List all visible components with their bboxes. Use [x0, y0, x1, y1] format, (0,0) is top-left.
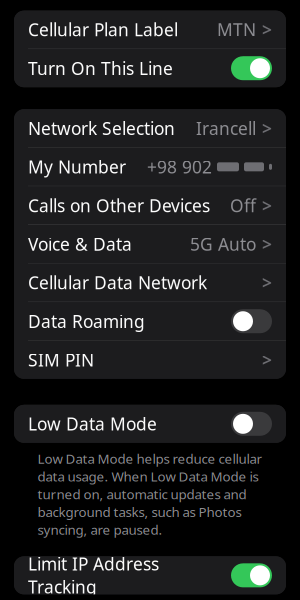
button[interactable]: SIM PIN [14, 341, 286, 379]
button[interactable]: Low Data Mode [14, 405, 286, 443]
button[interactable]: Calls on Other Devices [14, 186, 286, 224]
button[interactable]: Cellular Plan Label [14, 11, 286, 49]
staticText: 5G Auto [190, 232, 256, 255]
button[interactable]: Cellular Data Network [14, 264, 286, 302]
button[interactable]: Data Roaming [14, 302, 286, 340]
staticText: Cellular Plan Label [28, 18, 178, 41]
staticText: Turn On This Line [28, 57, 173, 80]
staticText: SIM PIN [28, 348, 94, 371]
staticText: Cellular Data Network [28, 271, 207, 294]
staticText: Low Data Mode [28, 412, 157, 435]
staticText: > [262, 271, 272, 294]
staticText: > [262, 117, 272, 140]
staticText: Irancell [196, 117, 256, 140]
staticText: MTN [217, 18, 256, 41]
staticText: Off [230, 194, 256, 217]
button[interactable]: My Number [14, 148, 286, 186]
button[interactable]: Limit IP Address Tracking [14, 556, 286, 594]
staticText: Low Data Mode helps reduce cellular data… [37, 450, 262, 538]
staticText: > [262, 18, 272, 41]
staticText: Calls on Other Devices [28, 194, 210, 217]
button[interactable]: Voice & Data [14, 225, 286, 263]
staticText: > [262, 232, 272, 255]
staticText: My Number [28, 155, 126, 178]
staticText: Limit IP Address Tracking [28, 552, 159, 598]
staticText: > [262, 348, 272, 371]
staticText: Voice & Data [28, 232, 132, 255]
staticText: Network Selection [28, 117, 175, 140]
staticText: +98 902 [147, 155, 212, 178]
staticText: Data Roaming [28, 310, 145, 333]
staticText: > [262, 194, 272, 217]
button[interactable]: Turn On This Line [14, 49, 286, 87]
button[interactable]: Network Selection [14, 109, 286, 147]
